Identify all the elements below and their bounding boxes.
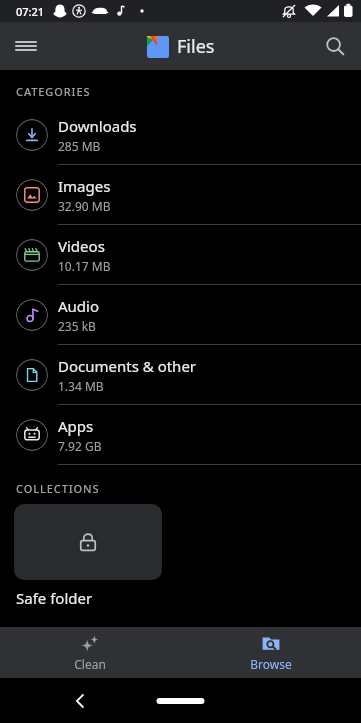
button[interactable]: Search [315, 26, 355, 66]
staticText: Files [177, 34, 215, 59]
staticText: CATEGORIES [16, 84, 91, 99]
staticText: Videos [58, 236, 105, 256]
staticText: Clean [74, 656, 106, 672]
staticText: 10.17 MB [58, 258, 111, 274]
button[interactable]: Safe folder [14, 504, 162, 580]
button[interactable]: Clean [0, 627, 180, 678]
staticText: COLLECTIONS [16, 481, 100, 496]
staticText: 32.90 MB [58, 198, 111, 214]
button[interactable]: Browse [180, 627, 361, 678]
button[interactable]: Audio [0, 285, 361, 345]
staticText: 235 kB [58, 318, 96, 334]
button[interactable]: Documents & other [0, 345, 361, 405]
staticText: 285 MB [58, 138, 101, 154]
staticText: 07:21 [16, 4, 45, 19]
staticText: Safe folder [16, 588, 93, 608]
button[interactable]: Apps [0, 405, 361, 465]
staticText: Documents & other [58, 356, 197, 376]
staticText: 1.34 MB [58, 378, 104, 394]
staticText: Apps [58, 416, 94, 436]
staticText: Browse [250, 656, 292, 672]
button[interactable]: Open navigation menu [6, 26, 46, 66]
button[interactable]: Images [0, 165, 361, 225]
staticText: Downloads [58, 116, 137, 136]
staticText: Audio [58, 296, 100, 316]
button[interactable]: Videos [0, 225, 361, 285]
button[interactable]: Downloads [0, 105, 361, 165]
staticText: Images [58, 176, 111, 196]
staticText: 7.92 GB [58, 438, 102, 454]
